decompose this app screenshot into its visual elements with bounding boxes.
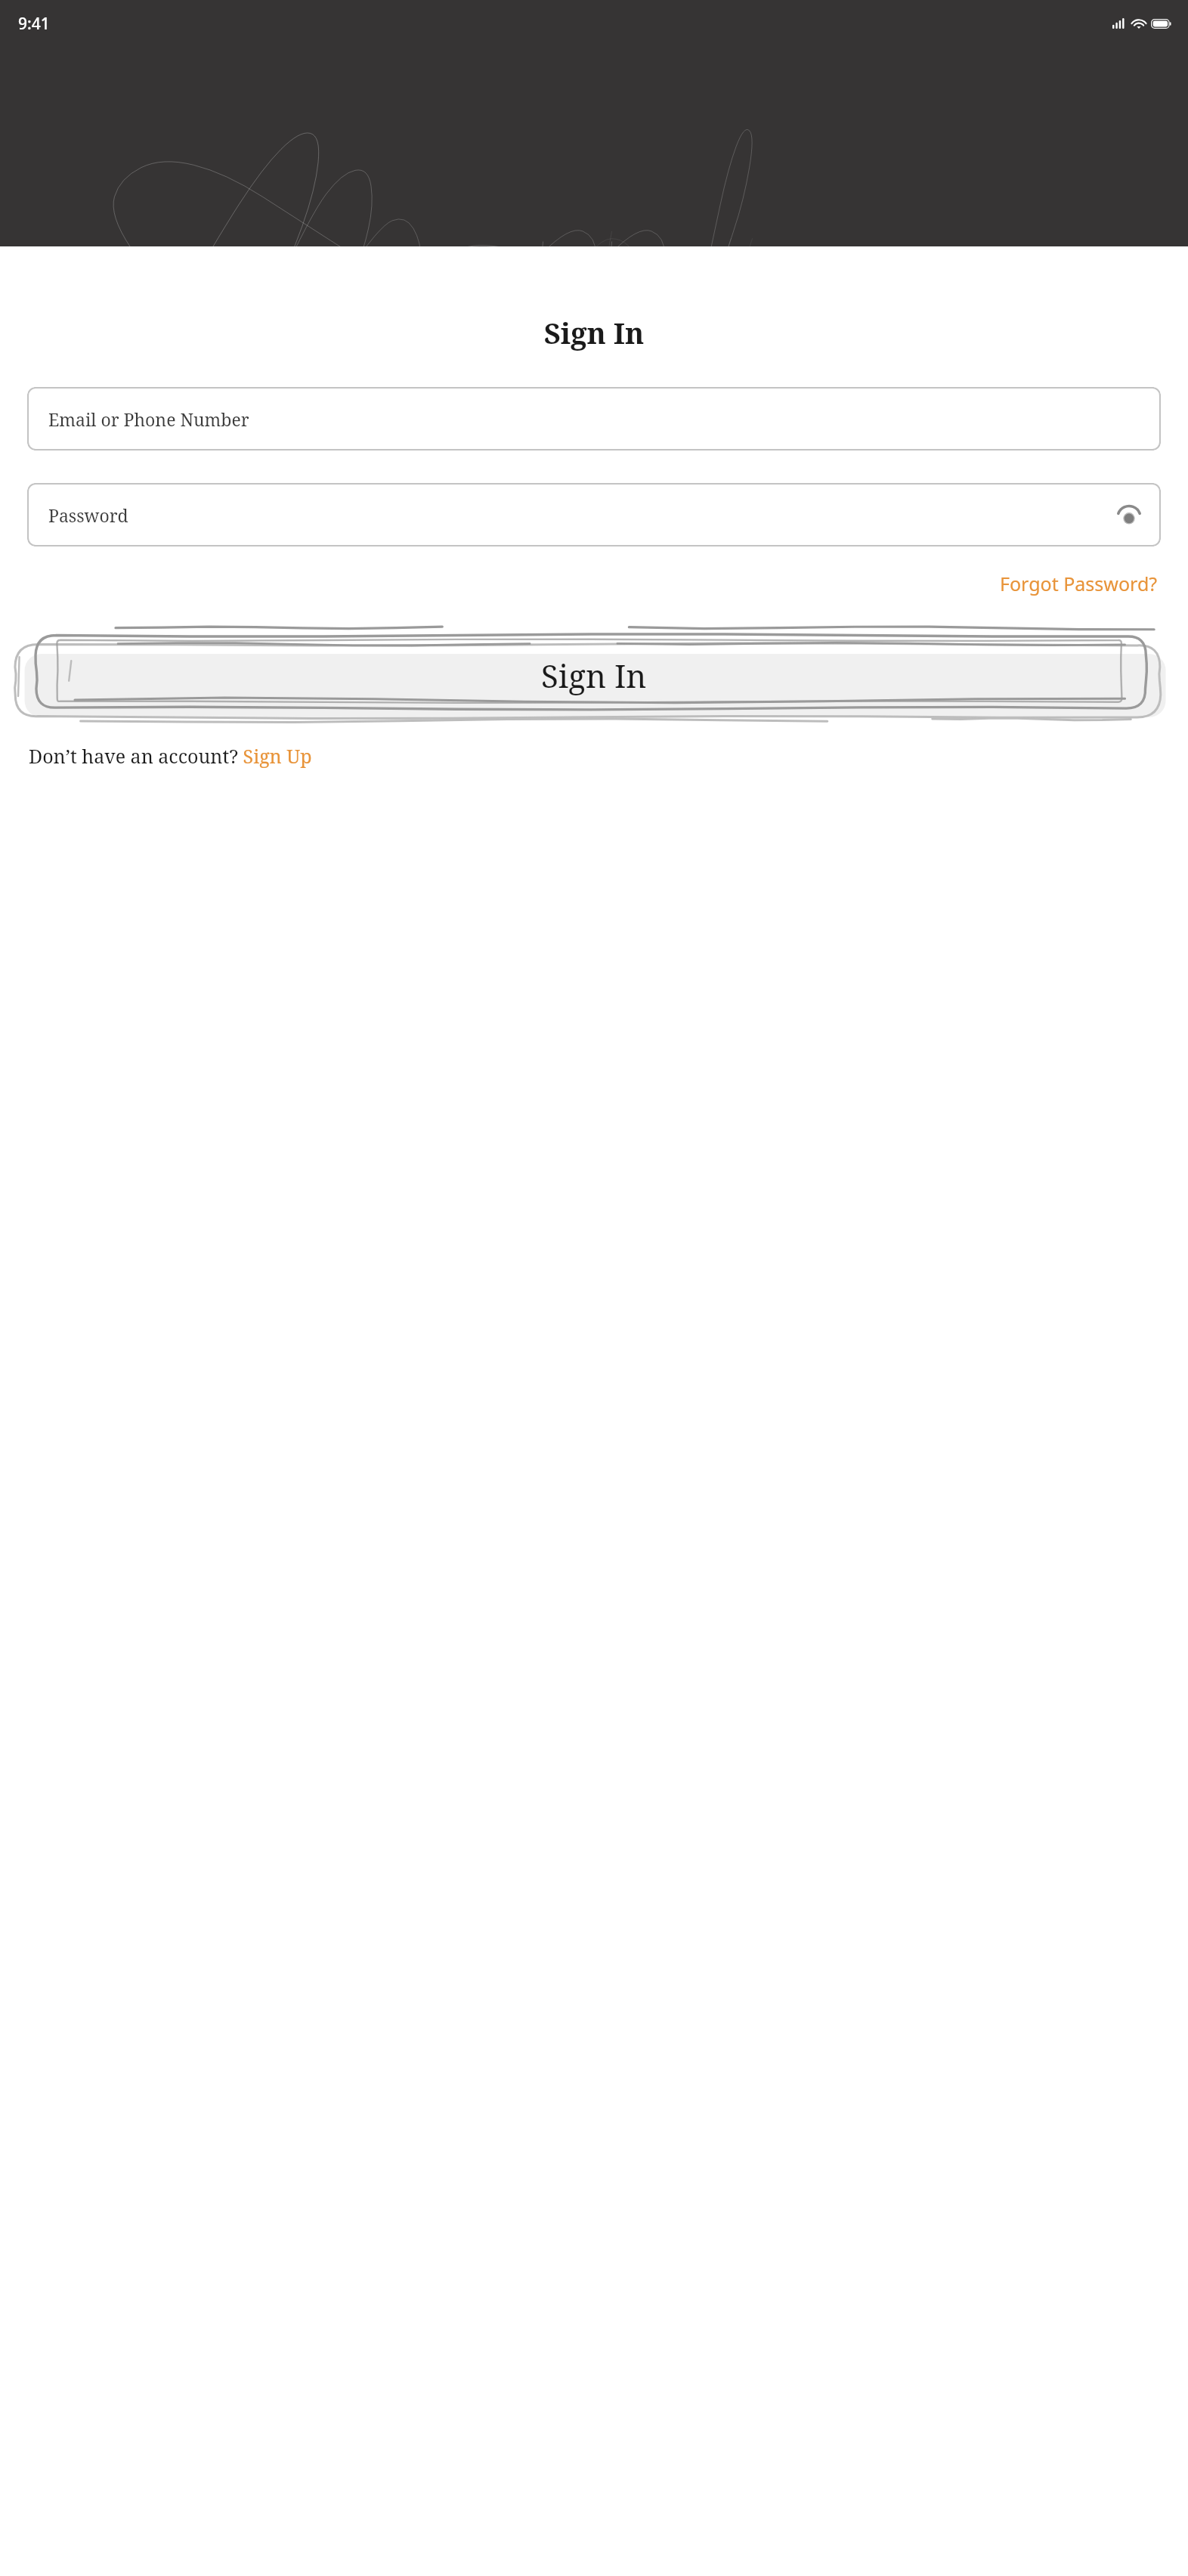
staticText: Don’t have an account? Sign Up bbox=[29, 743, 312, 769]
button[interactable]: Show password bbox=[1112, 498, 1146, 531]
button[interactable]: Don’t have an account? Sign Up bbox=[29, 740, 312, 772]
button[interactable]: Sign In bbox=[11, 622, 1177, 728]
button[interactable]: Password bbox=[27, 483, 1161, 546]
staticText: Password bbox=[48, 503, 128, 527]
button[interactable]: Email or Phone Number bbox=[27, 387, 1161, 450]
staticText: Sign In bbox=[541, 654, 647, 697]
staticText: Forgot Password? bbox=[1000, 571, 1158, 596]
staticText: Sign In bbox=[0, 313, 1188, 352]
staticText: 9:41 bbox=[18, 13, 50, 35]
staticText: Email or Phone Number bbox=[48, 407, 249, 431]
button[interactable]: Forgot Password? bbox=[997, 568, 1161, 599]
